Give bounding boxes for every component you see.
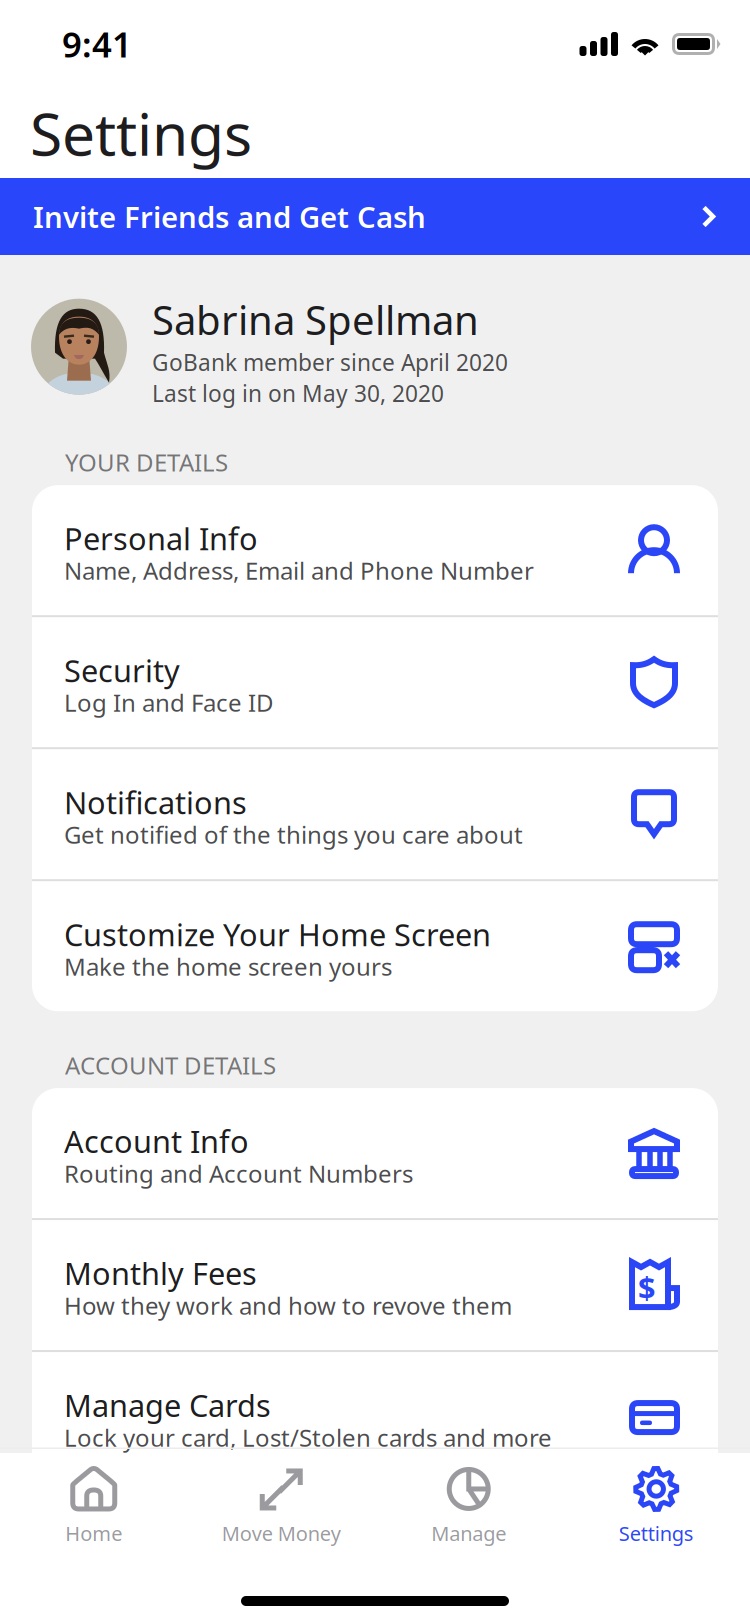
staticText: Account Info bbox=[64, 1121, 249, 1161]
staticText: Customize Your Home Screen bbox=[64, 914, 491, 955]
staticText: Log In and Face ID bbox=[64, 687, 274, 718]
staticText: $ bbox=[638, 1267, 656, 1307]
staticText: Monthly Fees bbox=[64, 1253, 257, 1293]
staticText: Lock your card, Lost/Stolen cards and mo… bbox=[64, 1421, 552, 1453]
staticText: YOUR DETAILS bbox=[65, 446, 228, 478]
staticText: Settings bbox=[30, 94, 252, 172]
button[interactable]: Move Money bbox=[187, 1465, 375, 1547]
button[interactable]: Security bbox=[32, 617, 718, 747]
staticText: 9:41 bbox=[62, 21, 132, 67]
staticText: GoBank member since April 2020 bbox=[152, 347, 508, 377]
staticText: How they work and how to revove them bbox=[64, 1289, 512, 1321]
staticText: ACCOUNT DETAILS bbox=[65, 1049, 276, 1081]
staticText: Name, Address, Email and Phone Number bbox=[64, 555, 534, 586]
button[interactable]: Account Info bbox=[32, 1088, 718, 1218]
button[interactable]: Home bbox=[0, 1465, 187, 1547]
button[interactable]: Monthly Fees bbox=[32, 1220, 718, 1350]
staticText: Personal Info bbox=[64, 518, 258, 559]
button[interactable]: Manage Cards bbox=[32, 1352, 718, 1482]
staticText: Make the home screen yours bbox=[64, 951, 392, 982]
button[interactable]: Invite Friends and Get Cash bbox=[0, 178, 750, 255]
button[interactable]: Customize Your Home Screen bbox=[32, 881, 718, 1011]
staticText: Manage bbox=[431, 1520, 506, 1547]
staticText: Move Money bbox=[222, 1520, 341, 1547]
staticText: Last log in on May 30, 2020 bbox=[152, 378, 444, 408]
staticText: Invite Friends and Get Cash bbox=[33, 197, 426, 236]
staticText: Sabrina Spellman bbox=[152, 293, 479, 346]
button[interactable]: Settings bbox=[562, 1465, 750, 1547]
staticText: Settings bbox=[619, 1520, 694, 1547]
staticText: Get notified of the things you care abou… bbox=[64, 819, 523, 850]
staticText: Manage Cards bbox=[64, 1385, 271, 1425]
button[interactable]: Manage bbox=[375, 1465, 562, 1547]
button[interactable]: Personal Info bbox=[32, 485, 718, 615]
staticText: Notifications bbox=[64, 782, 247, 823]
staticText: Home bbox=[65, 1520, 122, 1547]
staticText: Routing and Account Numbers bbox=[64, 1157, 413, 1189]
button[interactable]: Notifications bbox=[32, 749, 718, 879]
staticText: Security bbox=[64, 650, 180, 691]
